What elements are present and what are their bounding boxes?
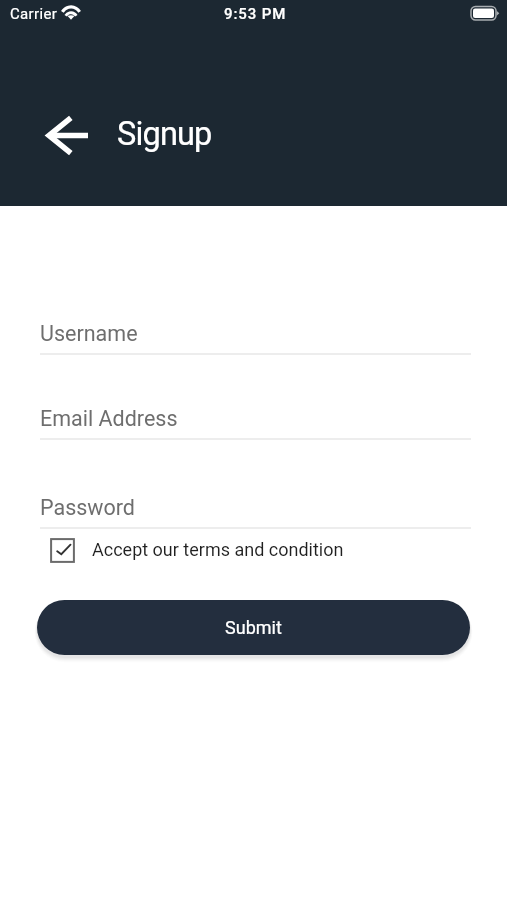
staticText: Carrier	[10, 5, 58, 23]
button[interactable]: Password	[40, 495, 471, 531]
staticText: 9:53 PM	[224, 5, 287, 23]
staticText: Submit	[225, 617, 282, 638]
staticText: Email Address	[40, 406, 178, 431]
button[interactable]: Submit	[37, 600, 470, 655]
button[interactable]: Back	[38, 106, 96, 164]
button[interactable]: Email Address	[40, 406, 471, 442]
staticText: Accept our terms and condition	[92, 539, 344, 560]
staticText: Password	[40, 495, 135, 520]
button[interactable]: Accept our terms and condition	[50, 537, 344, 562]
button[interactable]: Username	[40, 321, 471, 357]
staticText: Signup	[117, 115, 212, 153]
staticText: Username	[40, 321, 138, 346]
